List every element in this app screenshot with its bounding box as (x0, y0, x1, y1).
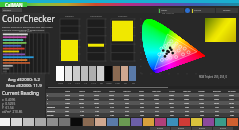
staticText: Source (194, 9, 202, 12)
staticText: Luminance (90, 15, 102, 18)
button[interactable]: Meter (158, 8, 184, 13)
staticText: 0.282 (229, 94, 234, 96)
staticText: 18.82 (184, 102, 189, 104)
staticText: Neut 3.5 (123, 90, 131, 92)
staticText: cd/m² 210.86 (2, 110, 23, 114)
staticText: 0.313 (65, 94, 70, 96)
staticText: Button (157, 127, 164, 130)
staticText: 1.72 (95, 106, 99, 108)
staticText: 2.81 (170, 114, 174, 116)
staticText: 4.12 (200, 106, 204, 108)
staticText: Sky (124, 82, 127, 84)
staticText: Delta E 2000 (19, 30, 32, 33)
button[interactable]: Y (46, 101, 239, 105)
staticText: Blk (100, 82, 103, 84)
staticText: Bl Green (228, 90, 236, 92)
staticText: 4.82 (140, 114, 144, 116)
staticText: 0.329 (65, 98, 70, 100)
staticText: y 0.5255 (2, 102, 16, 106)
button[interactable]: Info (185, 8, 190, 13)
button[interactable]: Button (171, 127, 191, 130)
staticText: 1.42 (95, 114, 99, 116)
button[interactable]: Display (216, 8, 238, 13)
staticText: Neut 5 (109, 90, 115, 92)
staticText: 36.41 (169, 102, 174, 104)
staticText: CalMAN (5, 2, 23, 8)
button[interactable]: Source (191, 8, 215, 13)
staticText: 1.21 (80, 106, 84, 108)
staticText: Y (47, 102, 49, 104)
staticText: Y 61.54 (2, 106, 14, 110)
staticText: 0.00 (65, 110, 69, 112)
staticText: D.Skin (106, 82, 112, 84)
button[interactable]: x (46, 93, 239, 97)
staticText: 3.80 (155, 114, 159, 116)
button[interactable]: Button (213, 127, 233, 130)
staticText: Current Reading (2, 90, 39, 97)
staticText: 0.313 (109, 94, 114, 96)
staticText: 41.52 (229, 102, 234, 104)
button[interactable]: Button (192, 127, 212, 130)
staticText: 0.328 (124, 98, 129, 100)
staticText: 2.90 (230, 114, 234, 116)
staticText: Button (178, 127, 185, 130)
button[interactable]: Target dE (46, 105, 239, 109)
staticText: 0.243 (214, 98, 219, 100)
staticText: 3.21 (170, 106, 174, 108)
staticText: N 3.5 (91, 82, 96, 84)
staticText: Contrast (118, 15, 128, 18)
staticText: 0.314 (124, 94, 129, 96)
staticText: Foliage (198, 90, 205, 92)
staticText: 6.91 (215, 110, 219, 112)
button[interactable]: CalMAN home (0, 2, 27, 8)
button[interactable]: dE2000 (46, 113, 239, 117)
staticText: 5.62 (140, 106, 144, 108)
staticText: CIE 1931 xy (162, 12, 174, 15)
staticText: 3.30 (230, 106, 234, 108)
button[interactable]: Button (150, 127, 170, 130)
staticText: Black (139, 90, 144, 92)
staticText: White (58, 82, 63, 84)
staticText: y (47, 98, 48, 100)
staticText: Blue Sky (183, 90, 191, 92)
staticText: 1.54 (95, 110, 99, 112)
staticText: Avg dE2000: 5.2 (0, 76, 48, 82)
staticText: 0.00 (65, 114, 69, 116)
staticText: Session (3, 9, 12, 12)
staticText: 19.42 (109, 102, 114, 104)
staticText: 0.401 (154, 94, 159, 96)
staticText: 8.52 (125, 102, 129, 104)
staticText: 0.341 (199, 94, 204, 96)
staticText: 0.363 (169, 94, 174, 96)
staticText: 58.42 (79, 102, 84, 104)
staticText: RGB Triplet: 255, 255, 0 (199, 75, 228, 79)
button[interactable]: Session (2, 8, 22, 12)
staticText: 6.42 (215, 114, 219, 116)
staticText: Neut 6.5 (93, 90, 101, 92)
staticText: 0.320 (139, 94, 144, 96)
staticText: Foli (132, 82, 135, 84)
staticText: 2.02 (110, 110, 114, 112)
button[interactable]: y (46, 97, 239, 101)
button[interactable]: Target dE (46, 109, 239, 113)
